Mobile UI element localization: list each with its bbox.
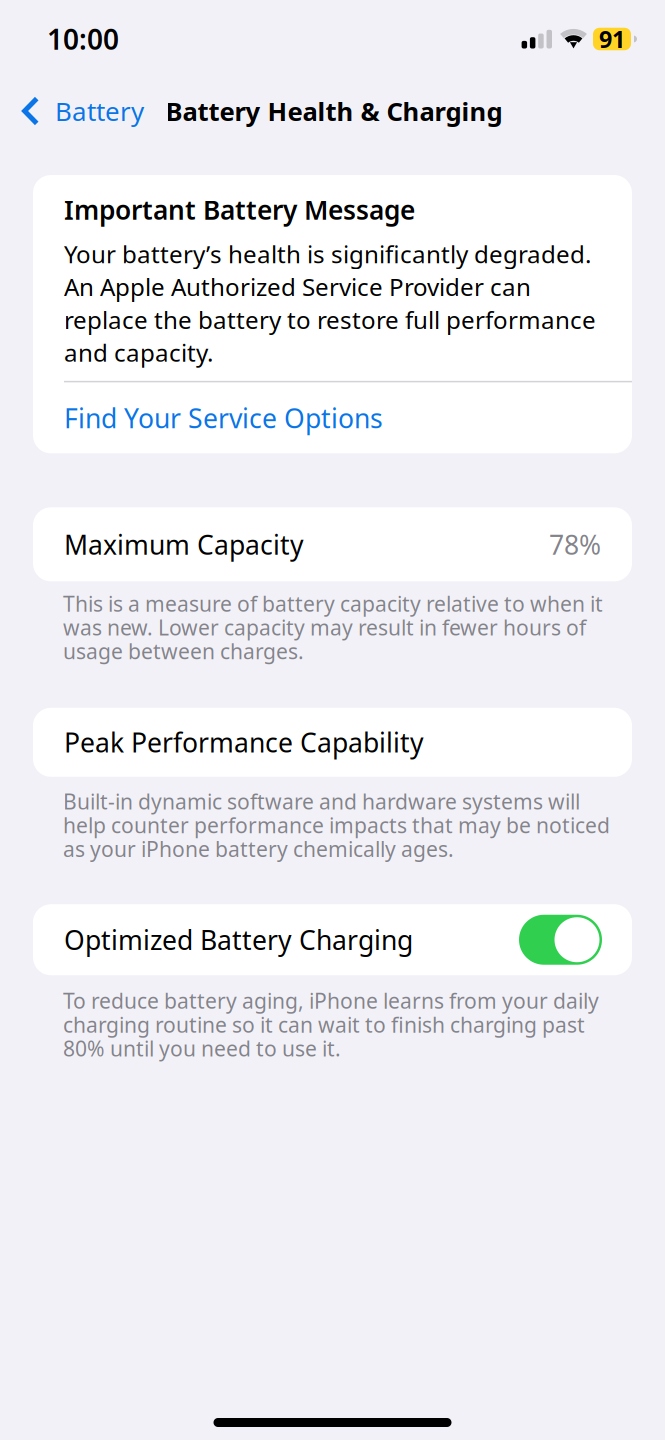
staticText: Your battery’s health is significantly d… <box>64 237 596 369</box>
staticText: Find Your Service Options <box>64 400 383 436</box>
staticText: 10:00 <box>47 20 119 58</box>
staticText: Peak Performance Capability <box>64 724 424 760</box>
staticText: 78% <box>549 526 601 562</box>
button[interactable]: Battery <box>0 87 156 135</box>
staticText: Maximum Capacity <box>64 526 304 562</box>
staticText: Optimized Battery Charging <box>64 922 413 958</box>
staticText: This is a measure of battery capacity re… <box>63 592 603 663</box>
button[interactable]: Optimized Battery Charging <box>519 915 602 965</box>
button[interactable]: Peak Performance Capability <box>0 708 632 777</box>
staticText: Built-in dynamic software and hardware s… <box>63 789 610 861</box>
button[interactable]: Find Your Service Options <box>64 382 601 453</box>
staticText: 91 <box>599 23 625 55</box>
staticText: Important Battery Message <box>64 192 415 227</box>
staticText: Battery <box>55 93 144 129</box>
staticText: Battery Health & Charging <box>166 94 503 128</box>
staticText: To reduce battery aging, iPhone learns f… <box>63 989 599 1060</box>
